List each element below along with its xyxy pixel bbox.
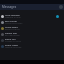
staticText: Re: new design xyxy=(5,34,20,37)
staticText: Chloe Reed xyxy=(5,25,18,28)
staticText: Frank Lowe xyxy=(5,43,18,46)
button[interactable]: Ben Carter xyxy=(0,19,64,25)
staticText: Elena Vaz xyxy=(5,37,16,40)
staticText: Thanks so much xyxy=(5,40,21,43)
staticText: Daniel Kim xyxy=(5,31,18,34)
staticText: Report is ready xyxy=(5,28,20,31)
staticText: Ben Carter xyxy=(5,19,18,22)
button[interactable]: Profile xyxy=(59,5,63,9)
button[interactable]: Daniel Kim xyxy=(0,31,64,37)
staticText: Messages xyxy=(2,5,17,9)
staticText: Alice Morgan xyxy=(5,13,20,16)
button[interactable]: Chloe Reed xyxy=(0,25,64,31)
button[interactable]: Frank Lowe xyxy=(0,43,64,49)
staticText: Invoice attached xyxy=(5,46,22,49)
button[interactable]: Elena Vaz xyxy=(0,37,64,43)
button[interactable]: Alice Morgan xyxy=(0,13,64,19)
staticText: Lunch tomorrow? xyxy=(5,22,23,25)
staticText: Meeting at 3pm xyxy=(5,16,21,19)
